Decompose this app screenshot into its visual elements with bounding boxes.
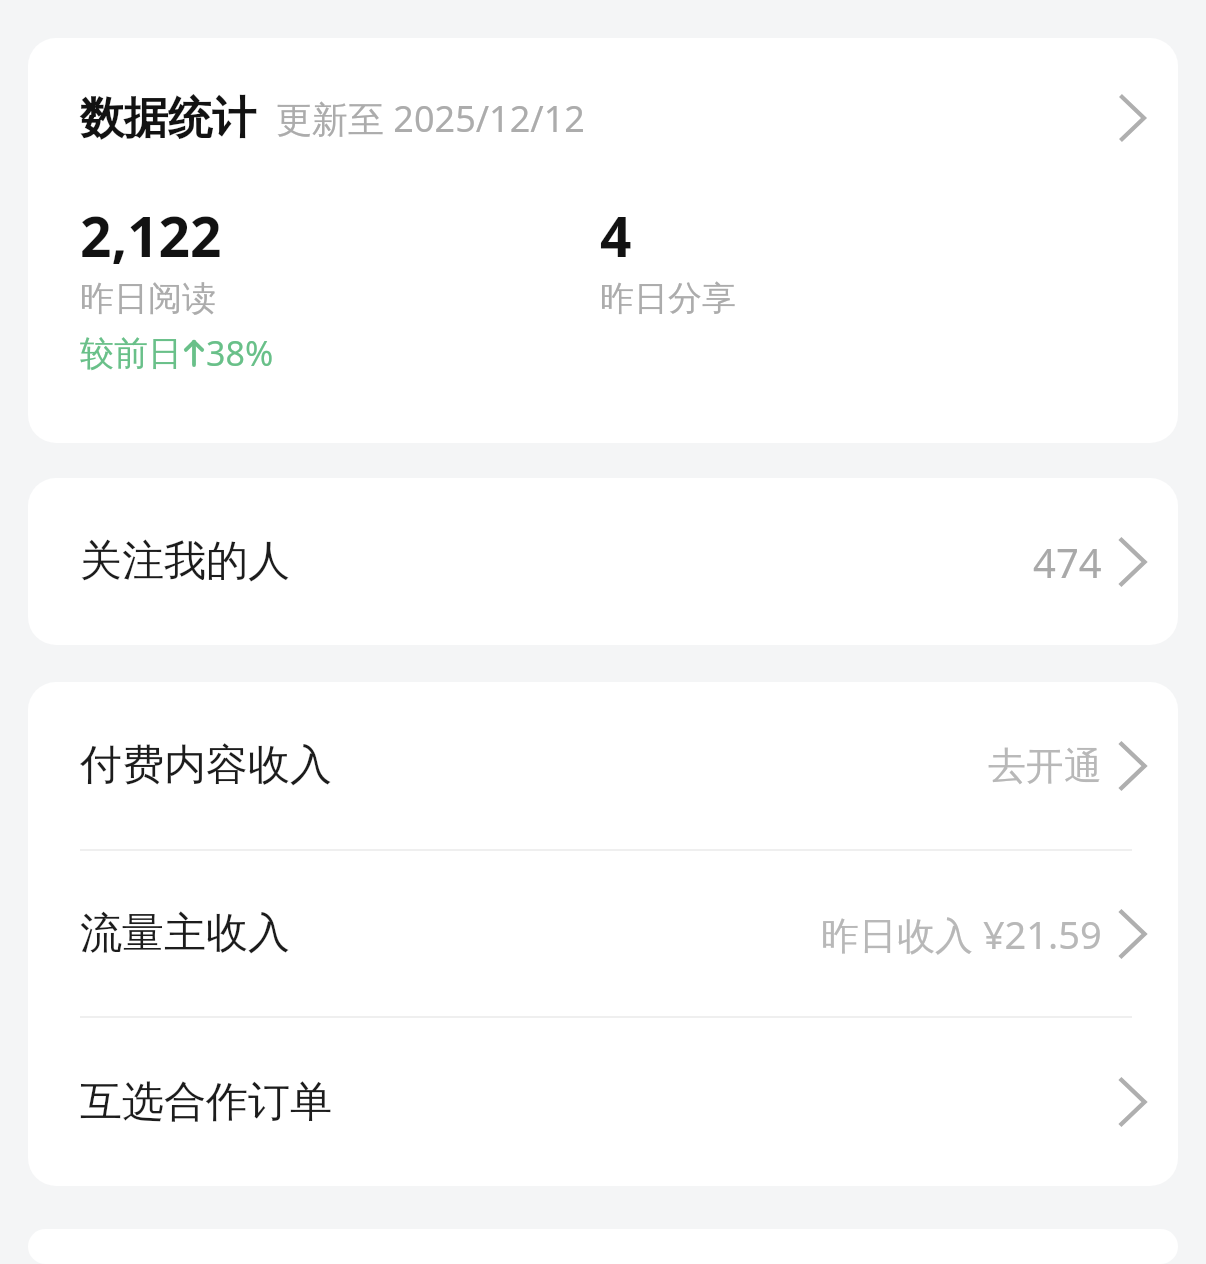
staticText: 昨日阅读 <box>80 277 216 320</box>
staticText: 互选合作订单 <box>80 1076 332 1129</box>
staticText: 2,122 <box>80 198 222 273</box>
staticText: 流量主收入 <box>80 907 290 960</box>
button[interactable]: 关注我的人 <box>28 478 1178 645</box>
button[interactable]: 流量主收入 <box>28 851 1178 1016</box>
staticText: 昨日分享 <box>600 277 736 320</box>
staticText: 去开通 <box>988 742 1102 790</box>
staticText: 更新至 2025/12/12 <box>276 94 585 143</box>
staticText: 昨日收入 ¥21.59 <box>821 908 1102 960</box>
staticText: 付费内容收入 <box>80 739 332 792</box>
button[interactable]: 付费内容收入 <box>28 682 1178 849</box>
staticText: 4 <box>600 198 632 273</box>
button[interactable]: 互选合作订单 <box>28 1018 1178 1186</box>
staticText: 474 <box>1033 535 1102 589</box>
staticText: 38% <box>206 330 274 376</box>
button[interactable]: 数据统计 <box>28 38 1178 198</box>
staticText: 关注我的人 <box>80 535 290 588</box>
staticText: 较前日 <box>80 332 182 375</box>
staticText: 数据统计 <box>80 91 256 146</box>
